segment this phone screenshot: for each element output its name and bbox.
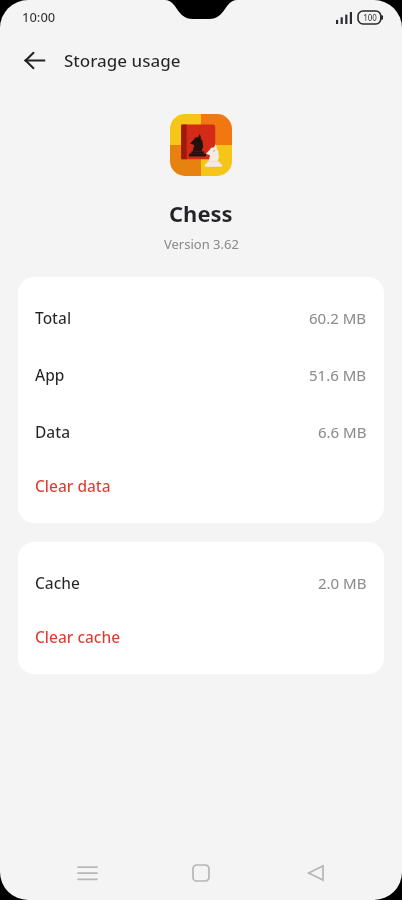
button[interactable]: Recent apps (59, 846, 115, 900)
staticText: 51.6 MB (309, 365, 367, 385)
staticText: Clear cache (35, 626, 121, 647)
staticText: Version 3.62 (164, 235, 239, 253)
staticText: 60.2 MB (309, 308, 367, 328)
staticText: Cache (35, 572, 80, 593)
button[interactable]: Home (173, 846, 229, 900)
staticText: 100 (363, 12, 377, 23)
button[interactable]: Cache (18, 554, 384, 611)
staticText: 10:00 (22, 8, 56, 26)
staticText: Storage usage (64, 49, 181, 72)
staticText: 2.0 MB (318, 573, 367, 593)
button[interactable]: App (18, 346, 384, 403)
button[interactable]: Clear cache (18, 611, 384, 661)
staticText: 6.6 MB (318, 422, 367, 442)
button[interactable]: Back (288, 846, 344, 900)
staticText: Data (35, 421, 70, 442)
staticText: Chess (169, 198, 233, 228)
staticText: Total (35, 307, 72, 328)
button[interactable]: Clear data (18, 460, 384, 510)
staticText: App (35, 364, 65, 385)
button[interactable]: Data (18, 403, 384, 460)
button[interactable]: Back (12, 38, 56, 82)
staticText: Clear data (35, 475, 111, 496)
button[interactable]: Total (18, 289, 384, 346)
